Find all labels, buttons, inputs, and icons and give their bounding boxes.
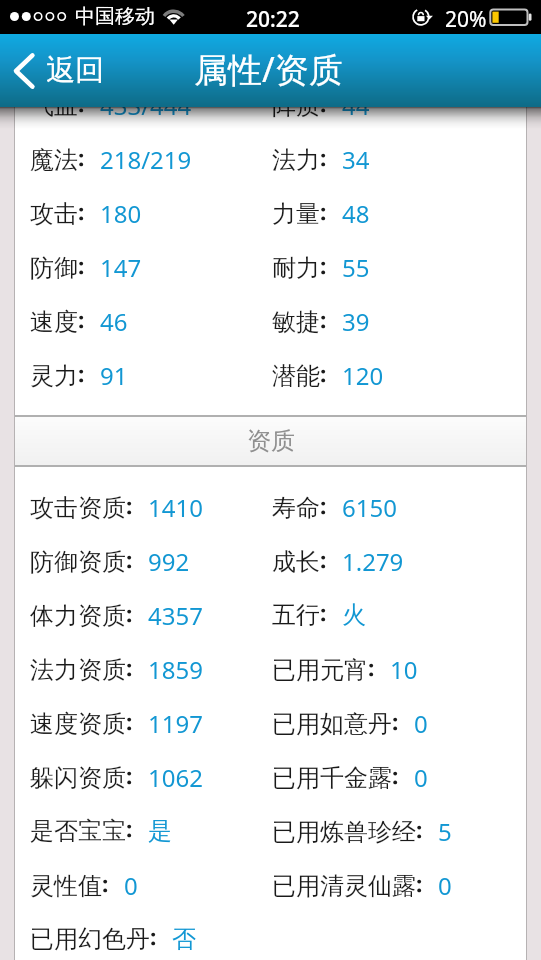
staticText: 已用千金露: [272, 763, 392, 793]
staticText: 攻击: [30, 199, 78, 229]
staticText: 资质: [247, 426, 295, 456]
staticText: 法力: [272, 145, 320, 175]
staticText: 120: [342, 359, 384, 392]
staticText: 48: [342, 197, 370, 230]
button[interactable]: 防御: [14, 240, 527, 294]
button[interactable]: 攻击资质: [14, 480, 527, 534]
staticText: 已用炼兽珍经: [272, 817, 416, 847]
staticText: 433/444: [100, 89, 192, 122]
staticText: 体力资质: [30, 601, 126, 631]
button[interactable]: 体力资质: [14, 588, 527, 642]
button[interactable]: 速度: [14, 294, 527, 348]
staticText: 耐力: [272, 253, 320, 283]
staticText: 属性/资质: [194, 46, 343, 92]
staticText: 1197: [148, 707, 203, 740]
staticText: 防御: [30, 253, 78, 283]
staticText: 5: [438, 815, 452, 848]
staticText: 1062: [148, 761, 203, 794]
staticText: 46: [100, 305, 128, 338]
button[interactable]: 法力资质: [14, 642, 527, 696]
staticText: 20%: [445, 5, 487, 34]
staticText: 否: [172, 924, 196, 954]
staticText: 180: [100, 197, 142, 230]
button[interactable]: 已用幻色丹: [14, 912, 527, 960]
button[interactable]: 躲闪资质: [14, 750, 527, 804]
button[interactable]: 是否宝宝: [14, 804, 527, 858]
staticText: 阵质: [272, 91, 320, 121]
staticText: 力量: [272, 199, 320, 229]
staticText: 55: [342, 251, 370, 284]
staticText: 91: [100, 359, 128, 392]
staticText: 五行: [272, 600, 320, 630]
staticText: 攻击资质: [30, 493, 126, 523]
staticText: 灵力: [30, 361, 78, 391]
staticText: 气血: [30, 91, 78, 121]
staticText: 218/219: [100, 143, 192, 176]
staticText: 返回: [46, 52, 104, 89]
staticText: 20:22: [246, 5, 300, 34]
staticText: 寿命: [272, 493, 320, 523]
button[interactable]: 灵性值: [14, 858, 527, 912]
staticText: 6150: [342, 491, 397, 524]
staticText: 992: [148, 545, 190, 578]
button[interactable]: 魔法: [14, 132, 527, 186]
staticText: 魔法: [30, 145, 78, 175]
staticText: 10: [390, 653, 418, 686]
staticText: 1.279: [342, 545, 404, 578]
button[interactable]: 攻击: [14, 186, 527, 240]
button[interactable]: 灵力: [14, 348, 527, 402]
staticText: 1410: [148, 491, 203, 524]
staticText: 已用如意丹: [272, 709, 392, 739]
staticText: 中国移动: [75, 4, 155, 29]
staticText: 0: [124, 869, 138, 902]
staticText: 防御资质: [30, 547, 126, 577]
button[interactable]: 防御资质: [14, 534, 527, 588]
button[interactable]: 返回 Back: [0, 42, 118, 99]
staticText: 0: [414, 707, 428, 740]
staticText: 147: [100, 251, 142, 284]
staticText: 敏捷: [272, 307, 320, 337]
staticText: 44: [342, 89, 370, 122]
staticText: 已用清灵仙露: [272, 871, 416, 901]
staticText: 1859: [148, 653, 203, 686]
staticText: 法力资质: [30, 655, 126, 685]
staticText: 躲闪资质: [30, 763, 126, 793]
staticText: 成长: [272, 547, 320, 577]
staticText: 已用元宵: [272, 655, 368, 685]
staticText: 0: [438, 869, 452, 902]
staticText: 34: [342, 143, 370, 176]
staticText: 4357: [148, 599, 203, 632]
staticText: 火: [342, 600, 366, 630]
button[interactable]: 气血: [14, 78, 527, 132]
staticText: 灵性值: [30, 871, 102, 901]
staticText: 0: [414, 761, 428, 794]
staticText: 已用幻色丹: [30, 924, 150, 954]
staticText: 是: [148, 816, 172, 846]
staticText: 39: [342, 305, 370, 338]
staticText: 是否宝宝: [30, 816, 126, 846]
button[interactable]: 速度资质: [14, 696, 527, 750]
staticText: 潜能: [272, 361, 320, 391]
staticText: 速度: [30, 307, 78, 337]
staticText: 速度资质: [30, 709, 126, 739]
